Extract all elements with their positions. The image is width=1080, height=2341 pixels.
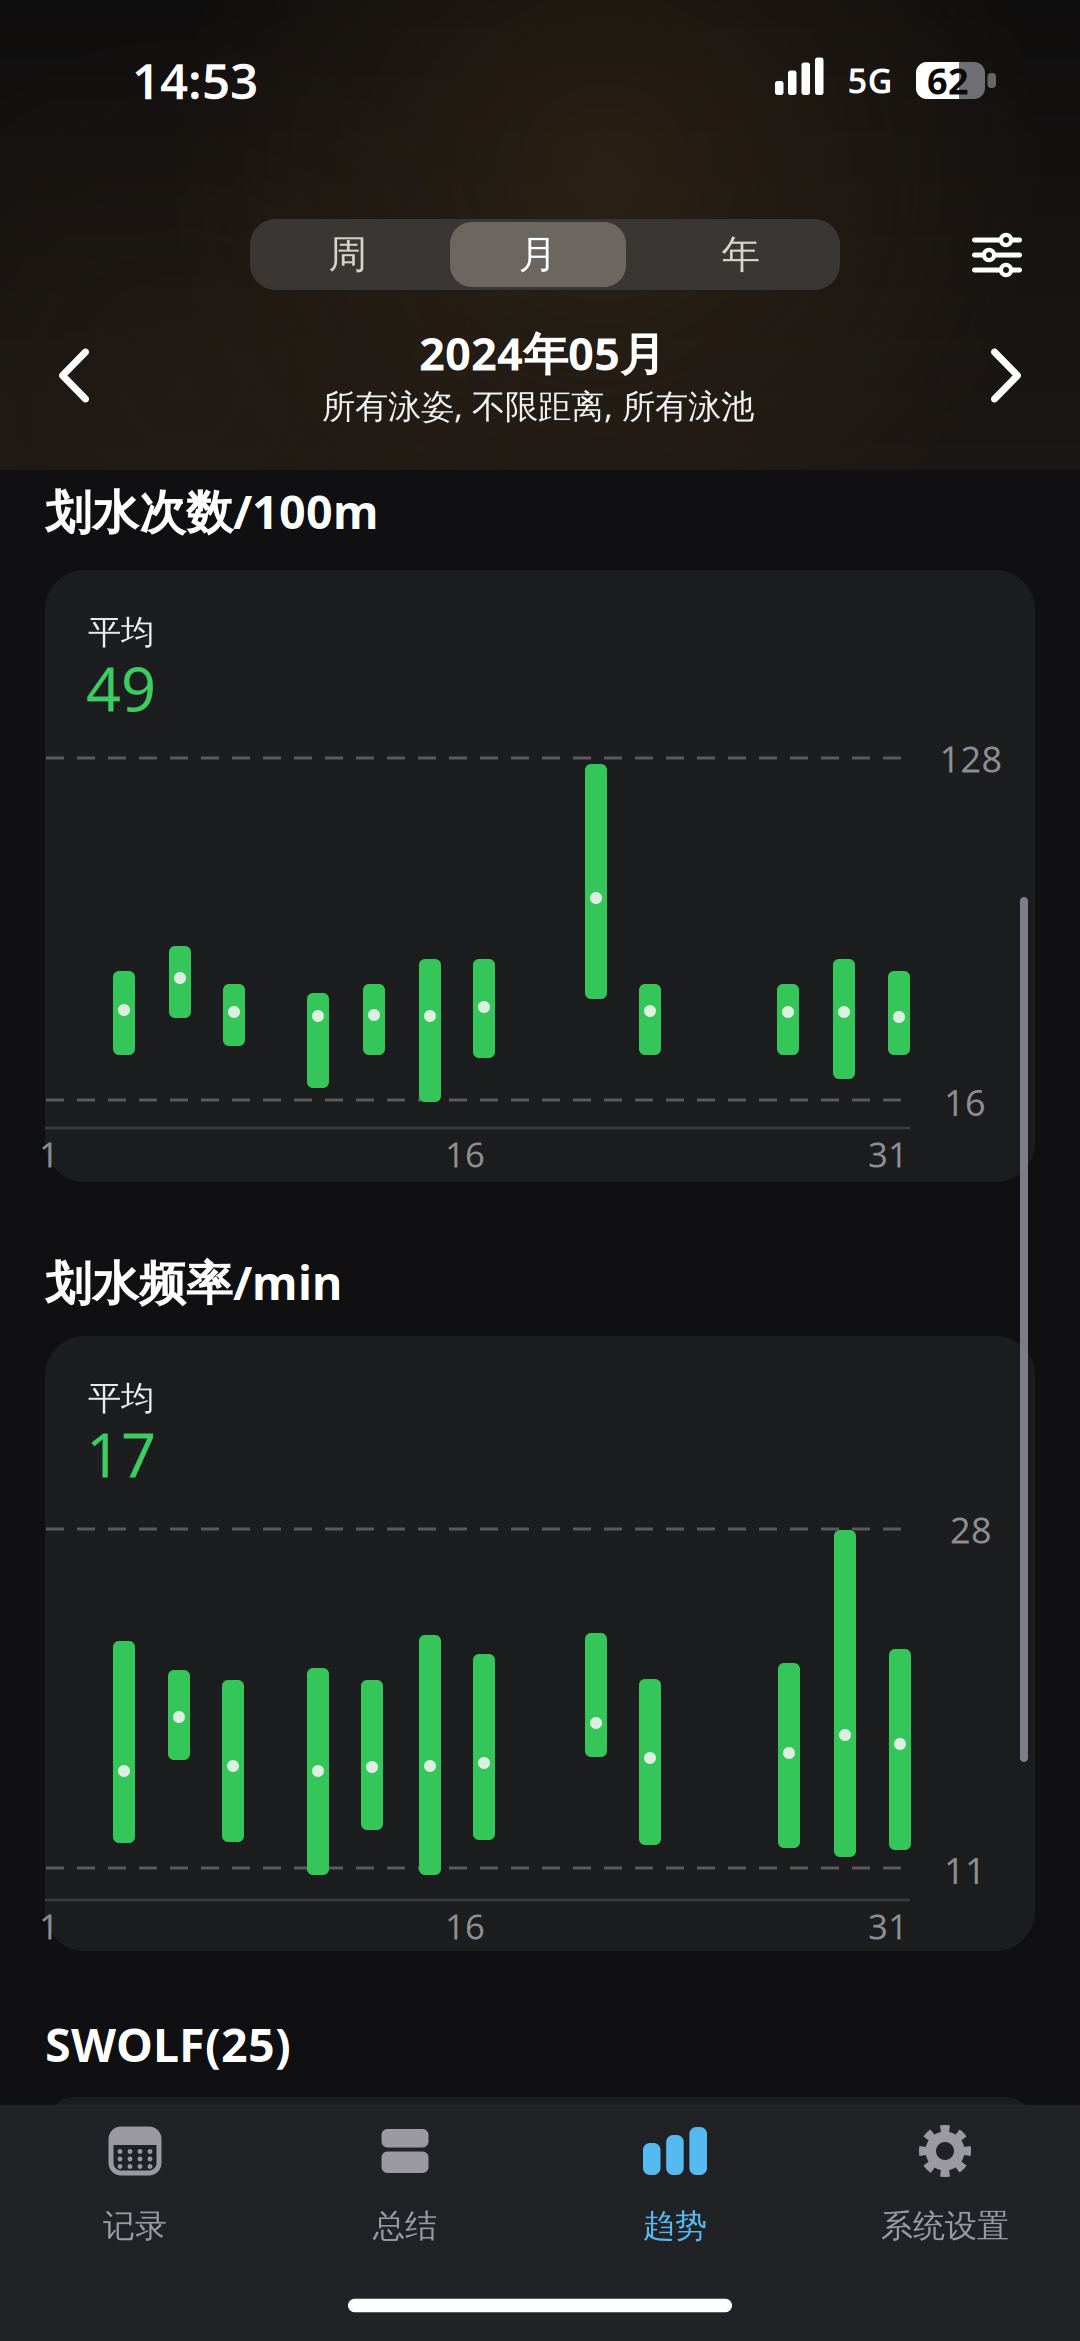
- button[interactable]: 周: [250, 219, 446, 290]
- staticText: 总结: [373, 2206, 437, 2246]
- staticText: 31: [868, 1903, 908, 1949]
- staticText: 划水次数/100m: [45, 480, 379, 542]
- staticText: SWOLF(25): [45, 2013, 291, 2075]
- button[interactable]: 筛选: [972, 222, 1022, 287]
- staticText: 趋势: [643, 2206, 707, 2246]
- staticText: 划水频率/min: [45, 1251, 342, 1313]
- staticText: 记录: [103, 2206, 167, 2246]
- staticText: 16: [944, 1078, 986, 1126]
- button[interactable]: 下一月: [986, 346, 1026, 405]
- staticText: 11: [944, 1846, 986, 1894]
- staticText: 16: [445, 1903, 485, 1949]
- staticText: 62: [927, 57, 969, 104]
- staticText: 所有泳姿, 不限距离, 所有泳池: [322, 383, 754, 428]
- staticText: 1: [39, 1131, 59, 1177]
- button[interactable]: 月: [440, 219, 636, 290]
- staticText: 14:53: [132, 47, 258, 113]
- staticText: 月: [518, 231, 557, 278]
- button[interactable]: 总结: [270, 2105, 540, 2341]
- button[interactable]: 年: [643, 219, 839, 290]
- staticText: 28: [950, 1506, 992, 1553]
- staticText: 128: [939, 735, 1002, 782]
- button[interactable]: 上一月: [54, 346, 94, 405]
- staticText: 1: [39, 1903, 59, 1949]
- button[interactable]: 趋势: [540, 2105, 810, 2341]
- staticText: 平均: [88, 1378, 154, 1419]
- staticText: 5G: [847, 57, 892, 103]
- staticText: 年: [721, 231, 760, 278]
- staticText: 周: [328, 231, 367, 278]
- staticText: 17: [86, 1413, 156, 1494]
- button[interactable]: 记录: [0, 2105, 270, 2341]
- button[interactable]: 系统设置: [810, 2105, 1080, 2341]
- staticText: 31: [868, 1131, 908, 1177]
- staticText: 平均: [88, 612, 154, 653]
- staticText: 49: [86, 647, 156, 728]
- staticText: 2024年05月: [419, 323, 665, 383]
- staticText: 系统设置: [881, 2206, 1009, 2246]
- staticText: 16: [445, 1131, 485, 1177]
